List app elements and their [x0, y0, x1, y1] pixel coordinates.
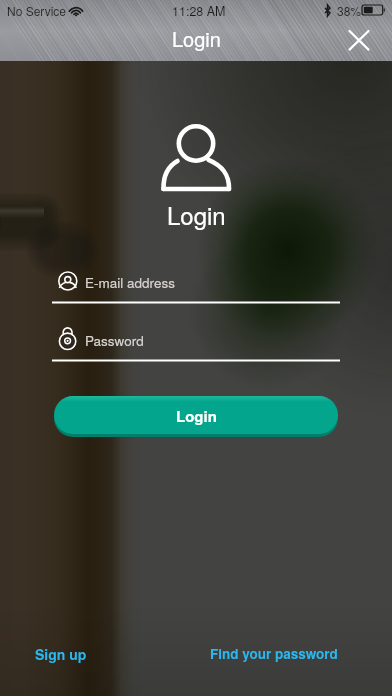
- staticText: Login: [172, 24, 221, 53]
- button[interactable]: Close: [338, 19, 379, 60]
- button[interactable]: Login: [54, 396, 338, 434]
- staticText: Login: [167, 197, 226, 231]
- staticText: Password: [85, 331, 144, 350]
- staticText: Sign up: [35, 644, 87, 664]
- button[interactable]: Sign up: [35, 644, 87, 664]
- staticText: 38%: [337, 2, 362, 19]
- button[interactable]: Find your password: [210, 644, 338, 663]
- staticText: Login: [176, 405, 217, 426]
- staticText: E-mail address: [85, 273, 175, 292]
- staticText: Find your password: [210, 644, 338, 663]
- staticText: No Service: [7, 2, 67, 19]
- staticText: 11:28 AM: [172, 2, 226, 20]
